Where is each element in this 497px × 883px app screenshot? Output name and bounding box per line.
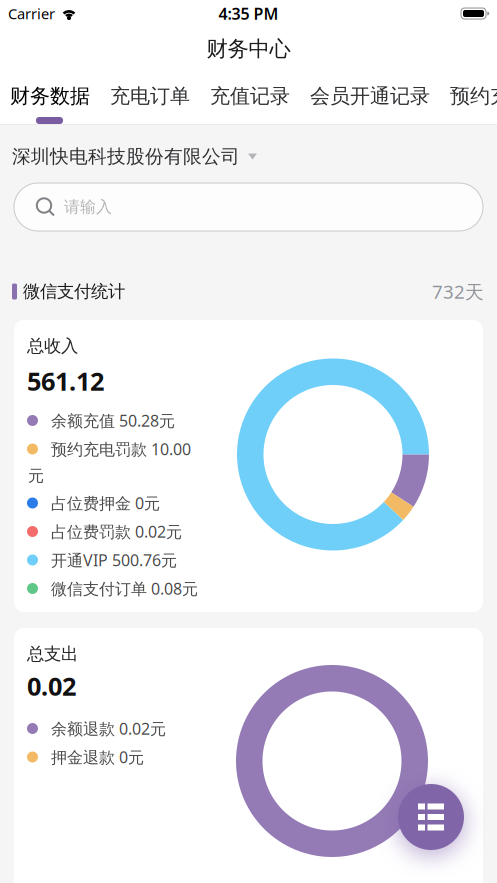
staticText: 请输入 — [64, 197, 112, 217]
staticText: 微信支付统计 — [23, 281, 125, 302]
staticText: 财务中心 — [206, 36, 290, 62]
button[interactable]: 充电订单 — [110, 66, 190, 125]
staticText: 余额退款 0.02元 — [51, 718, 166, 739]
staticText: 深圳快电科技股份有限公司 — [12, 145, 240, 168]
staticText: 财务数据 — [10, 84, 90, 108]
button[interactable]: 深圳快电科技股份有限公司 — [0, 125, 497, 173]
staticText: 0.02 — [27, 669, 76, 703]
staticText: 预约充电罚款 10.00 — [51, 438, 191, 460]
button[interactable]: 充值记录 — [210, 66, 290, 125]
staticText: 押金退款 0元 — [51, 746, 144, 768]
button[interactable]: 菜单 — [398, 784, 464, 850]
button[interactable]: 预约充 — [450, 66, 497, 125]
staticText: 4:35 PM — [218, 3, 278, 24]
staticText: 元 — [28, 466, 44, 486]
staticText: 充电订单 — [110, 84, 190, 108]
staticText: 开通VIP 500.76元 — [51, 549, 177, 571]
staticText: 会员开通记录 — [310, 84, 430, 108]
staticText: 余额充值 50.28元 — [51, 410, 175, 431]
staticText: 占位费罚款 0.02元 — [51, 521, 182, 542]
button[interactable]: 搜索 — [0, 173, 483, 231]
staticText: 微信支付订单 0.08元 — [51, 578, 198, 599]
staticText: 732天 — [432, 279, 484, 304]
staticText: 561.12 — [27, 364, 104, 398]
staticText: Carrier — [8, 4, 55, 23]
staticText: 占位费押金 0元 — [51, 492, 160, 514]
staticText: 充值记录 — [210, 84, 290, 108]
button[interactable]: 会员开通记录 — [310, 66, 430, 125]
staticText: 总收入 — [27, 335, 78, 357]
button[interactable]: 财务数据 — [10, 66, 90, 125]
staticText: 总支出 — [27, 643, 78, 665]
staticText: 预约充 — [450, 84, 497, 108]
